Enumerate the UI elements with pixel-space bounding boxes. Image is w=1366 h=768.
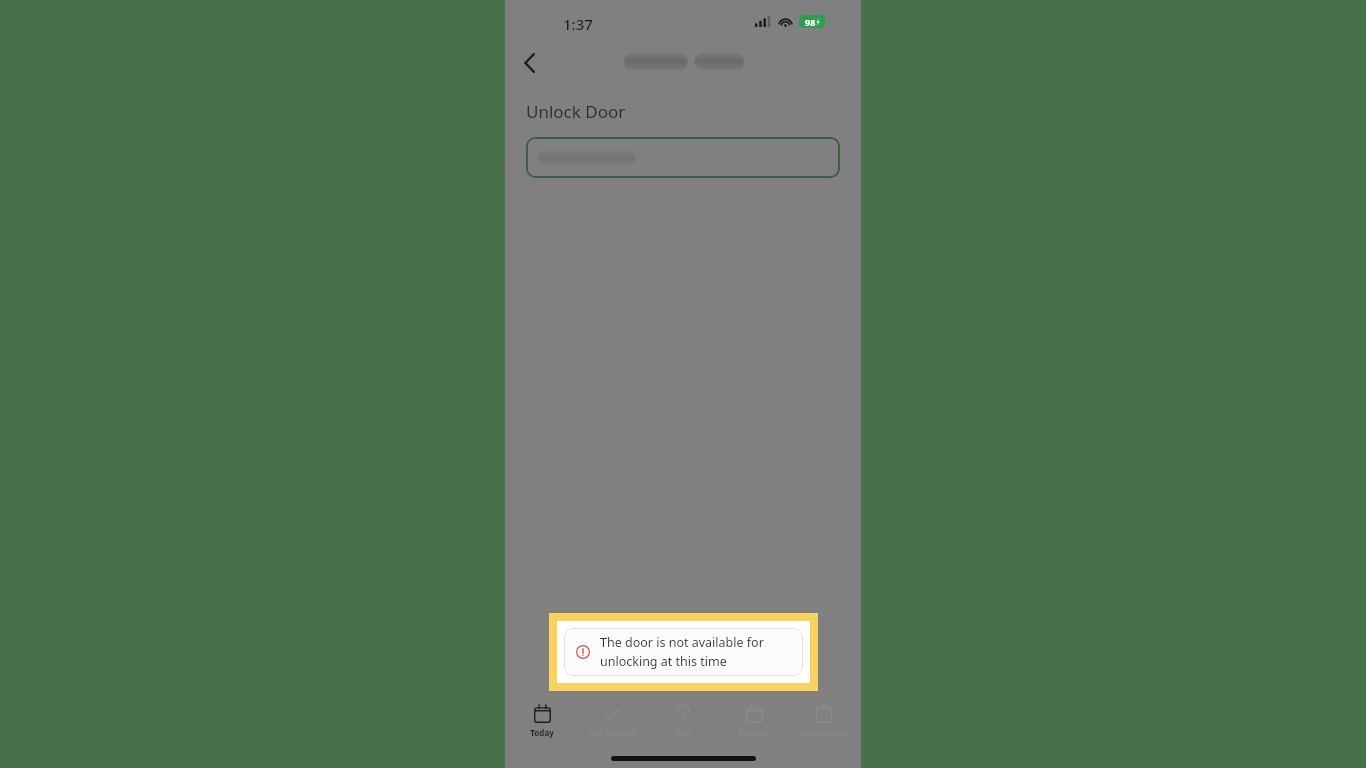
button[interactable]: Back [510, 44, 548, 82]
button[interactable]: Today [508, 703, 576, 740]
staticText: Today [530, 727, 554, 738]
staticText: The door is not available for unlocking … [600, 634, 803, 670]
staticText: Unlock Door [526, 100, 626, 123]
staticText: 98 [805, 16, 816, 28]
staticText: 1:37 [563, 14, 593, 34]
staticText: Booking [738, 727, 770, 738]
button[interactable]: The door is not available for unlocking … [564, 628, 803, 676]
button[interactable] [526, 137, 840, 178]
